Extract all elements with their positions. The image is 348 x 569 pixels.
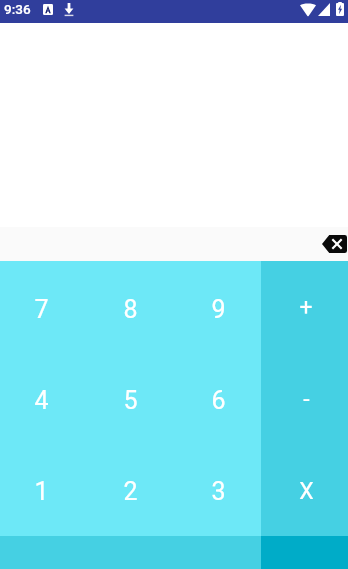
other: Mobile signal: [318, 3, 330, 16]
other: Download: [64, 3, 74, 16]
staticText: 6: [211, 386, 226, 415]
staticText: 1: [34, 477, 49, 506]
other: Battery: [336, 2, 344, 16]
button[interactable]: 7: [0, 261, 87, 352]
staticText: +: [299, 294, 313, 321]
staticText: X: [299, 478, 314, 505]
button[interactable]: -: [261, 352, 348, 444]
button[interactable]: 1: [0, 444, 87, 536]
staticText: 7: [34, 295, 49, 324]
staticText: 4: [34, 386, 49, 415]
staticText: 5: [123, 386, 138, 415]
button[interactable]: Backspace: [320, 231, 348, 257]
other: Notification: [43, 4, 53, 15]
other: Wi-Fi: [300, 3, 316, 16]
staticText: 9: [211, 295, 226, 324]
button[interactable]: 5: [87, 352, 174, 444]
button[interactable]: 6: [174, 352, 261, 444]
staticText: 2: [123, 477, 138, 506]
button[interactable]: 2: [87, 444, 174, 536]
button[interactable]: 9: [174, 261, 261, 352]
staticText: 8: [123, 295, 138, 324]
button[interactable]: 8: [87, 261, 174, 352]
staticText: -: [303, 386, 310, 413]
staticText: 3: [211, 477, 226, 506]
button[interactable]: 4: [0, 352, 87, 444]
button[interactable]: X: [261, 444, 348, 536]
staticText: 9:36: [4, 1, 31, 17]
button[interactable]: 3: [174, 444, 261, 536]
button[interactable]: +: [261, 261, 348, 352]
